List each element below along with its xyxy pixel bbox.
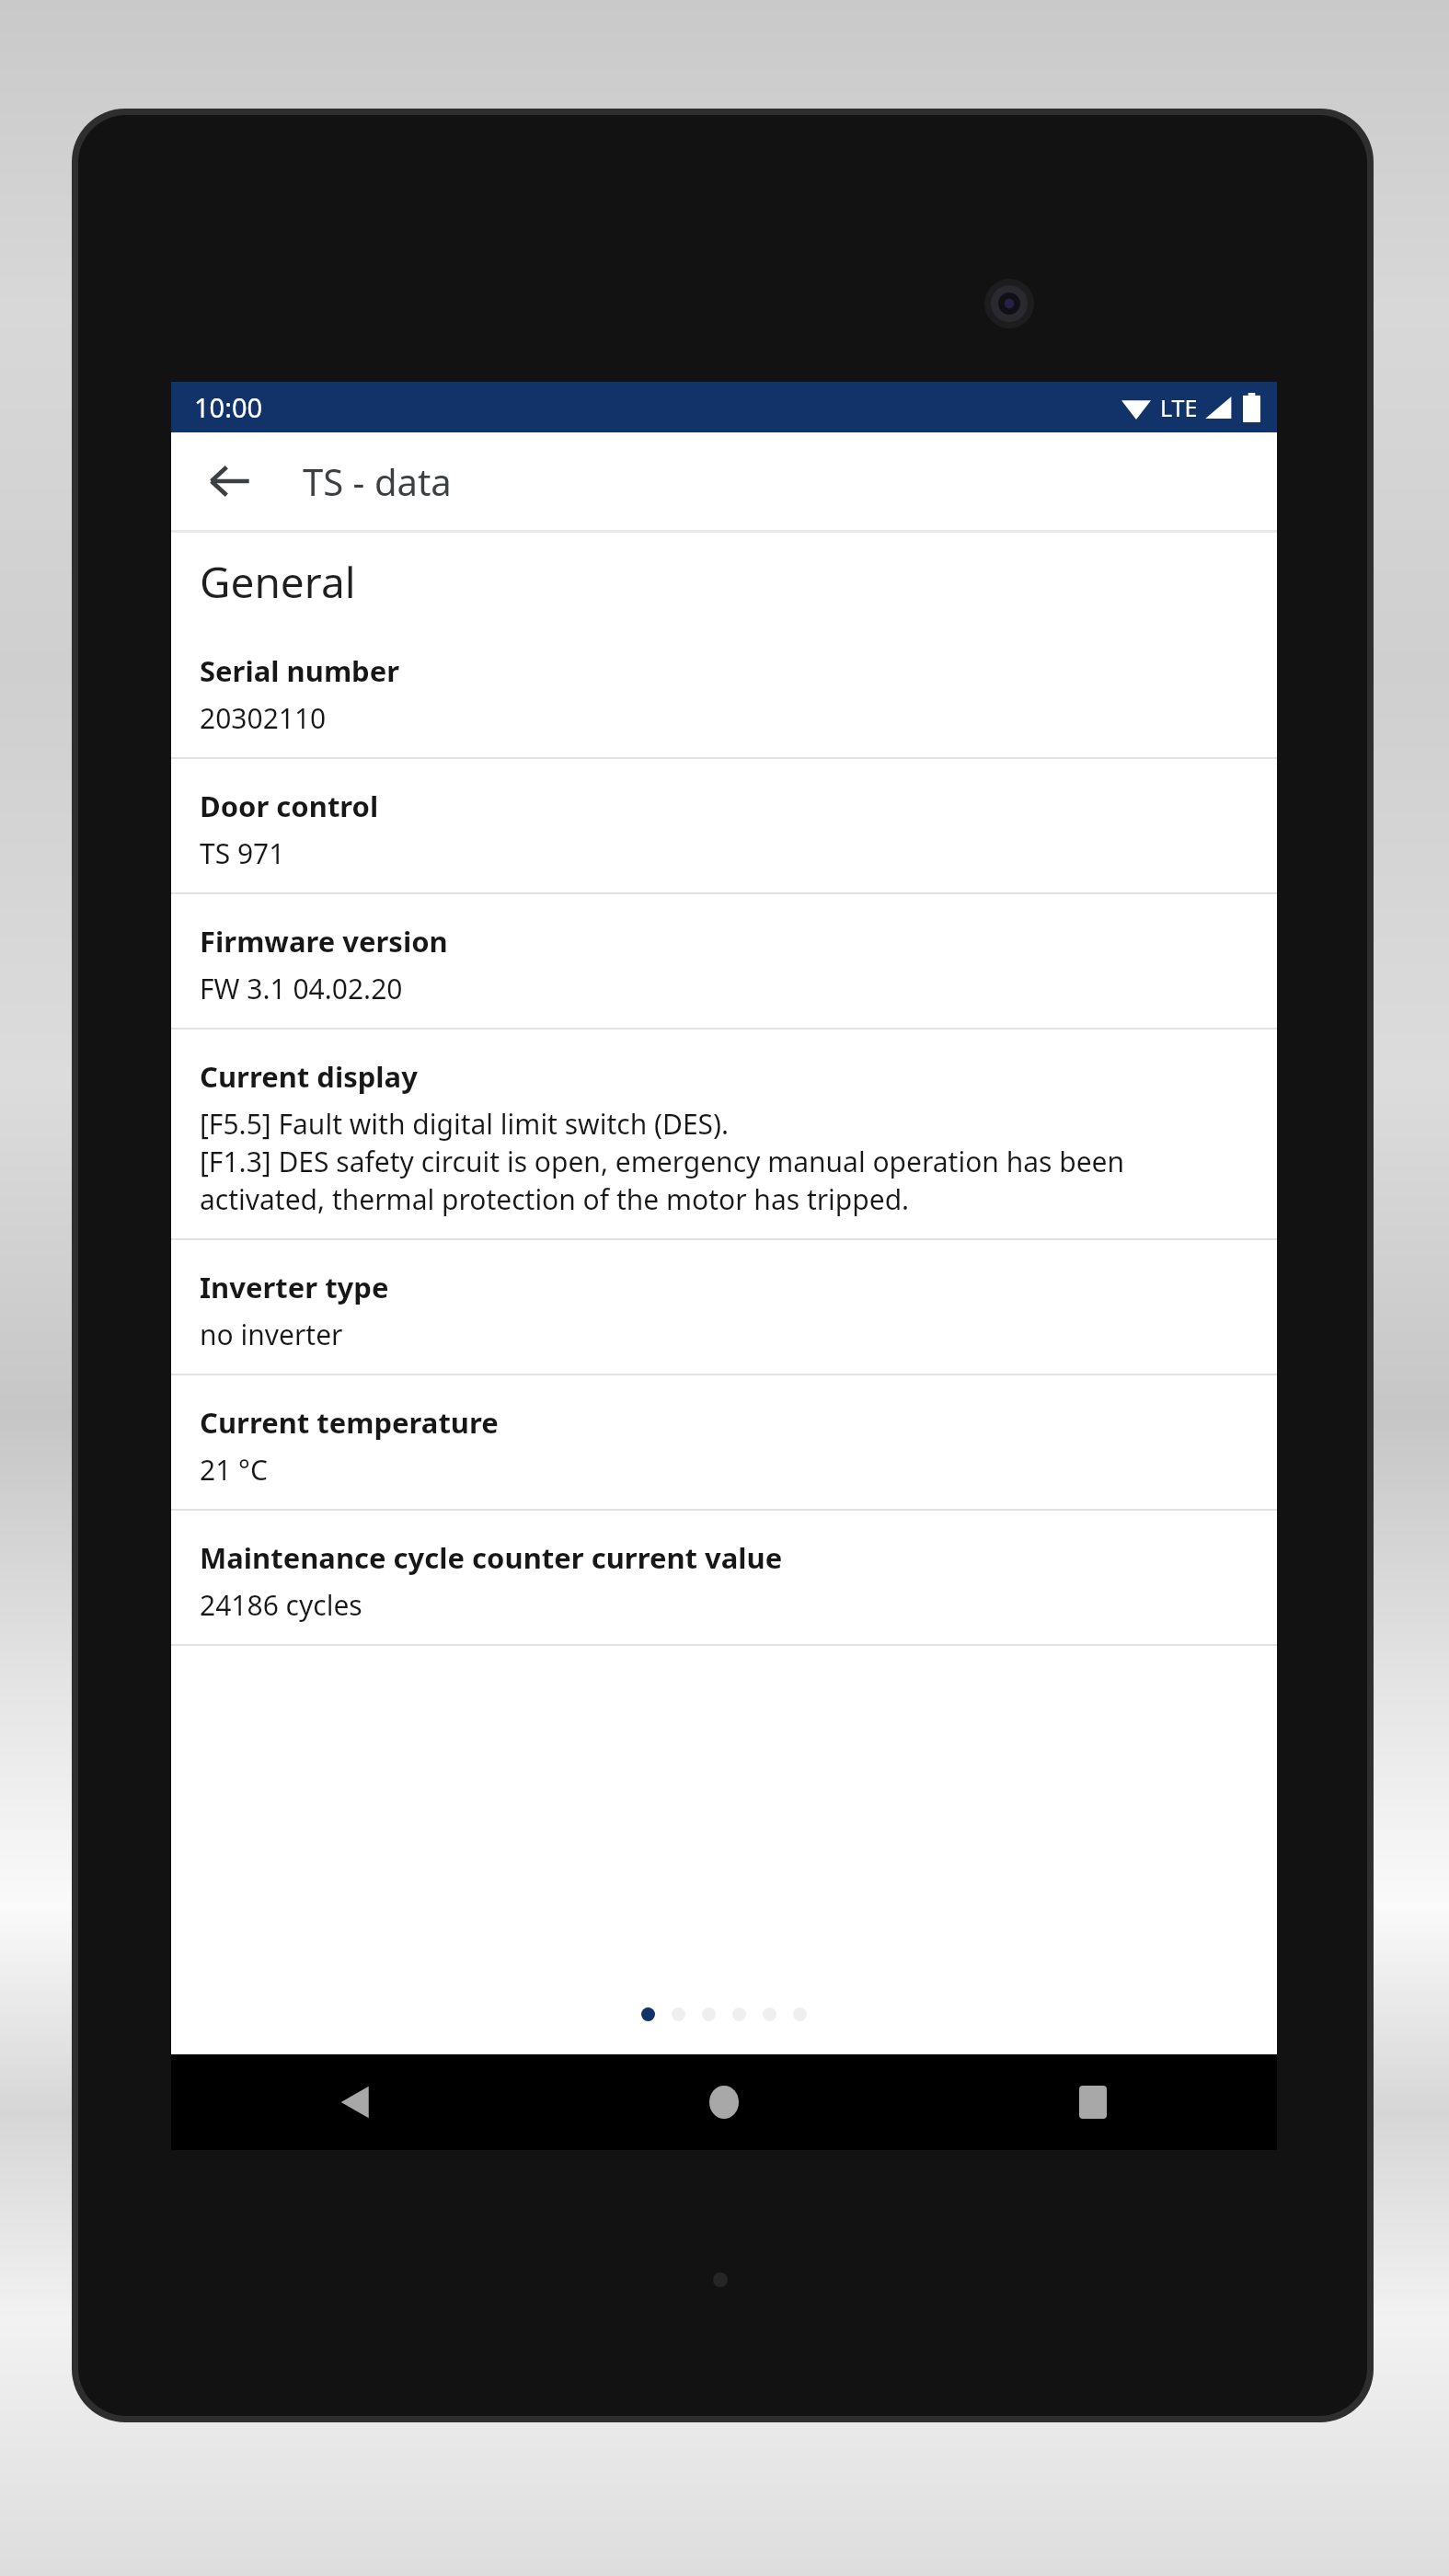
staticText: Serial number <box>200 651 400 690</box>
button[interactable]: Recent apps <box>908 2054 1277 2150</box>
staticText: Inverter type <box>200 1268 389 1306</box>
button[interactable]: Current temperature <box>171 1399 1277 1509</box>
button[interactable]: Back <box>171 2054 539 2150</box>
staticText: FW 3.1 04.02.20 <box>200 970 403 1007</box>
staticText: 20302110 <box>200 699 327 737</box>
staticText: no inverter <box>200 1316 343 1353</box>
staticText: 24186 cycles <box>200 1586 362 1624</box>
button[interactable]: Back <box>191 443 269 520</box>
button[interactable]: Home <box>539 2054 908 2150</box>
button[interactable]: Firmware version <box>171 918 1277 1028</box>
staticText: LTE <box>1160 392 1198 423</box>
button[interactable]: Maintenance cycle counter current value <box>171 1535 1277 1644</box>
staticText: Door control <box>200 787 379 825</box>
button[interactable]: Door control <box>171 783 1277 892</box>
staticText: [F1.3] DES safety circuit is open, emerg… <box>200 1143 1255 1218</box>
button[interactable]: Current display <box>171 1053 1277 1238</box>
staticText: Current display <box>200 1057 418 1096</box>
staticText: Maintenance cycle counter current value <box>200 1538 783 1577</box>
staticText: 10:00 <box>194 389 263 425</box>
staticText: Current temperature <box>200 1403 499 1442</box>
staticText: [F5.5] Fault with digital limit switch (… <box>200 1105 730 1143</box>
staticText: General <box>200 553 356 611</box>
staticText: TS 971 <box>200 834 285 872</box>
staticText: TS - data <box>303 456 452 506</box>
staticText: 21 °C <box>200 1451 268 1489</box>
button[interactable]: Inverter type <box>171 1264 1277 1374</box>
button[interactable]: Serial number <box>171 648 1277 757</box>
staticText: Firmware version <box>200 922 448 960</box>
